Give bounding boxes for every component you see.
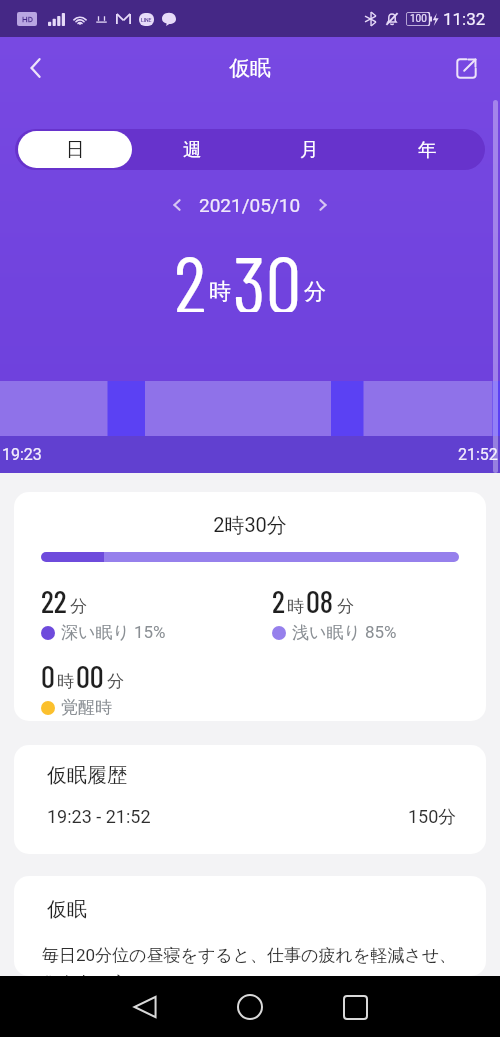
staticText: 2021/05/10 — [199, 194, 301, 216]
button[interactable]: Home — [223, 980, 277, 1034]
staticText: 毎日20分位の昼寝をすると、仕事の疲れを軽減させ、 集中力を高めることができます… — [42, 945, 457, 976]
staticText: HD — [22, 15, 33, 24]
button[interactable]: Recents — [328, 980, 382, 1034]
staticText: 2時30分 — [14, 513, 486, 538]
staticText: 浅い眠り 85% — [292, 622, 397, 643]
staticText: 00 — [76, 657, 104, 694]
staticText: 150分 — [408, 806, 457, 829]
button[interactable]: 2時30分 — [14, 492, 486, 721]
button[interactable]: Next day — [305, 187, 341, 223]
staticText: 19:23 - 21:52 — [47, 806, 151, 827]
staticText: 仮眠 — [229, 55, 271, 81]
staticText: 仮眠履歴 — [47, 763, 127, 788]
staticText: 年 — [418, 138, 437, 161]
staticText: 0 — [41, 657, 55, 694]
staticText: 2 — [272, 582, 285, 619]
staticText: 11:32 — [443, 9, 486, 29]
button[interactable]: 日 — [18, 131, 132, 168]
staticText: 分 — [70, 596, 87, 617]
staticText: 分 — [304, 278, 326, 306]
staticText: 仮眠 — [47, 897, 87, 922]
button[interactable]: 年 — [370, 131, 485, 168]
staticText: 週 — [183, 138, 202, 161]
staticText: 21:52 — [458, 445, 498, 464]
staticText: 100 — [410, 13, 427, 25]
staticText: 時 — [57, 671, 74, 692]
button[interactable]: Back — [118, 980, 172, 1034]
staticText: 19:23 — [2, 445, 42, 464]
staticText: 月 — [300, 138, 319, 161]
staticText: 分 — [337, 596, 354, 617]
button[interactable]: 週 — [135, 131, 249, 168]
staticText: 深い眠り 15% — [61, 622, 166, 643]
staticText: 08 — [306, 582, 334, 619]
staticText: 分 — [107, 671, 124, 692]
button[interactable]: Previous day — [159, 187, 195, 223]
staticText: 覚醒時 — [61, 697, 112, 718]
staticText: 22 — [41, 582, 67, 619]
button[interactable]: Back — [14, 46, 58, 90]
button[interactable]: 月 — [252, 131, 367, 168]
staticText: 30 — [233, 234, 302, 312]
staticText: 2 — [174, 234, 207, 312]
button[interactable]: Share — [444, 46, 488, 90]
staticText: LINE — [141, 17, 152, 23]
button[interactable]: 仮眠 — [14, 876, 486, 976]
staticText: 時 — [209, 278, 231, 306]
button[interactable]: 仮眠履歴 — [14, 745, 486, 854]
staticText: 時 — [287, 596, 304, 617]
staticText: 日 — [66, 138, 85, 161]
